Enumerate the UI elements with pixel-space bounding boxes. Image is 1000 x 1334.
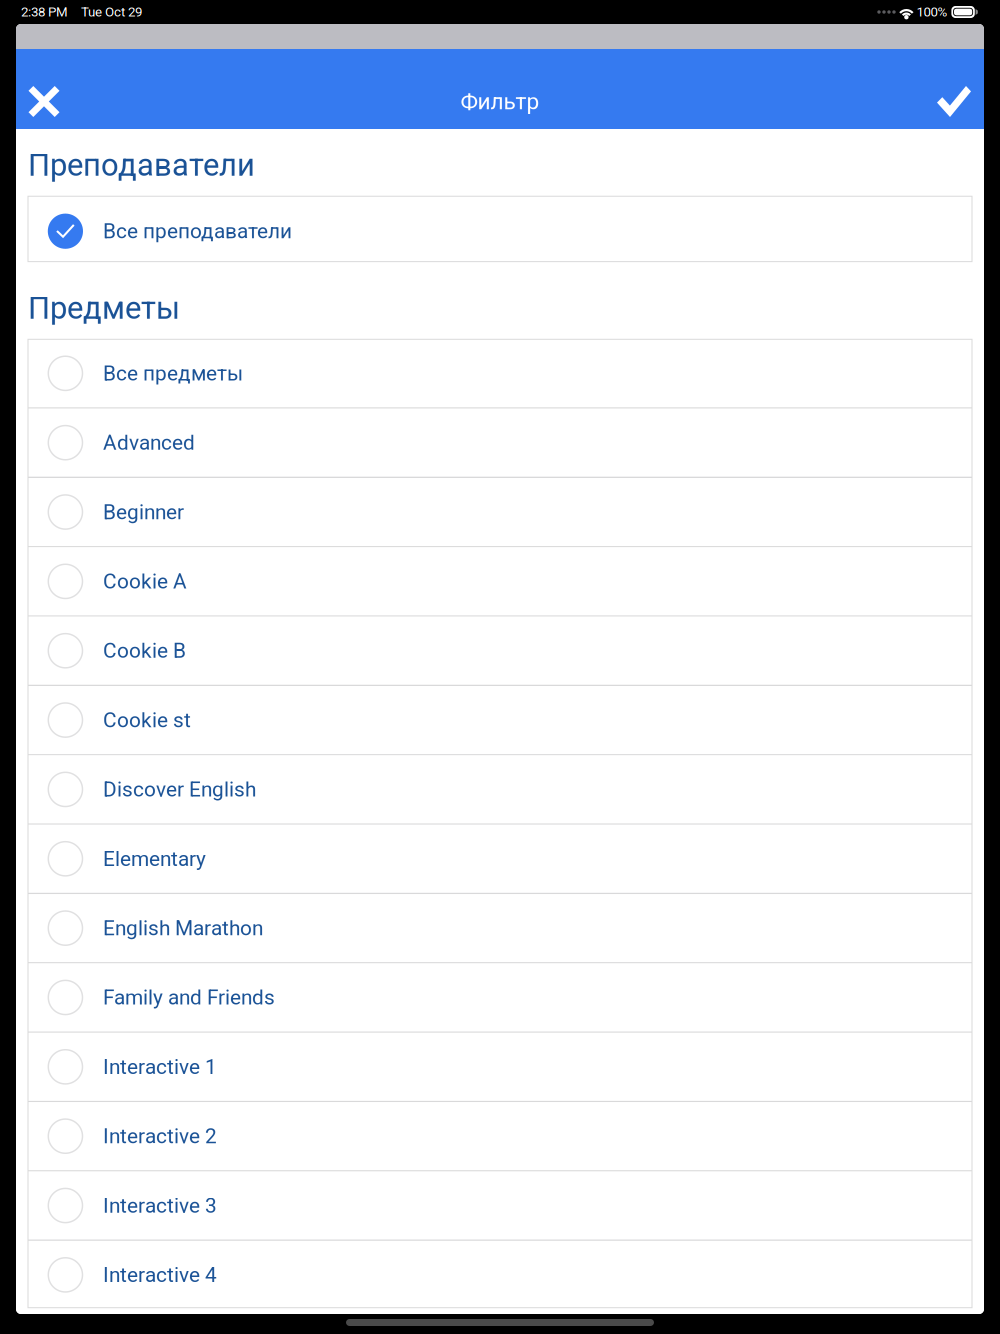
button[interactable]: Beginner bbox=[28, 478, 972, 546]
staticText: Все предметы bbox=[103, 361, 243, 385]
staticText: Фильтр bbox=[460, 88, 539, 115]
staticText: 2:38 PM bbox=[21, 4, 68, 20]
button[interactable]: Apply filter bbox=[927, 75, 980, 128]
staticText: Beginner bbox=[103, 500, 184, 524]
staticText: Преподаватели bbox=[28, 147, 255, 183]
staticText: Family and Friends bbox=[103, 985, 275, 1010]
staticText: Предметы bbox=[28, 290, 180, 326]
staticText: Discover English bbox=[103, 777, 256, 802]
staticText: 100% bbox=[916, 4, 947, 20]
button[interactable]: Family and Friends bbox=[28, 963, 972, 1031]
staticText: Interactive 4 bbox=[103, 1263, 217, 1287]
button[interactable]: Interactive 1 bbox=[28, 1033, 972, 1101]
staticText: Cookie A bbox=[103, 569, 187, 594]
staticText: Cookie st bbox=[103, 708, 191, 732]
button[interactable]: Interactive 4 bbox=[28, 1241, 972, 1309]
button[interactable]: Все преподаватели bbox=[28, 196, 972, 262]
button[interactable]: Все предметы bbox=[28, 339, 972, 407]
button[interactable]: Close bbox=[17, 75, 70, 128]
button[interactable]: Elementary bbox=[28, 825, 972, 893]
staticText: Tue Oct 29 bbox=[81, 4, 142, 20]
staticText: Interactive 1 bbox=[103, 1055, 217, 1079]
staticText: Interactive 3 bbox=[103, 1193, 217, 1218]
staticText: Elementary bbox=[103, 847, 206, 871]
button[interactable]: Cookie B bbox=[28, 617, 972, 685]
staticText: English Marathon bbox=[103, 916, 263, 940]
button[interactable]: Interactive 2 bbox=[28, 1102, 972, 1170]
staticText: Все преподаватели bbox=[103, 219, 292, 243]
button[interactable]: Advanced bbox=[28, 409, 972, 477]
staticText: Advanced bbox=[103, 430, 195, 455]
button[interactable]: Interactive 3 bbox=[28, 1171, 972, 1239]
button[interactable]: Cookie A bbox=[28, 547, 972, 615]
button[interactable]: English Marathon bbox=[28, 894, 972, 962]
staticText: Interactive 2 bbox=[103, 1124, 217, 1148]
staticText: Cookie B bbox=[103, 638, 186, 663]
button[interactable]: Discover English bbox=[28, 755, 972, 823]
button[interactable]: Cookie st bbox=[28, 686, 972, 754]
